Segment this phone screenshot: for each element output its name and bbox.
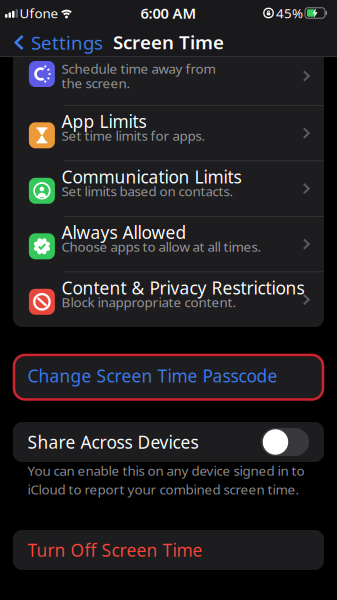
staticText: Change Screen Time Passcode	[27, 364, 277, 387]
button[interactable]: App Limits	[13, 106, 324, 160]
staticText: Set time limits for apps.	[61, 127, 205, 144]
staticText: Set limits based on contacts.	[61, 182, 233, 200]
staticText: Content & Privacy Restrictions	[61, 276, 304, 299]
staticText: Ufone	[19, 4, 58, 22]
button[interactable]: Communication Limits	[13, 161, 324, 216]
staticText: You can enable this on any device signed…	[27, 462, 304, 479]
staticText: Turn Off Screen Time	[27, 538, 202, 561]
staticText: Screen Time	[113, 30, 224, 54]
staticText: the screen.	[61, 74, 130, 92]
staticText: iCloud to report your combined screen ti…	[27, 480, 299, 498]
staticText: Schedule time away from	[61, 60, 215, 77]
button[interactable]: Content & Privacy Restrictions	[13, 272, 324, 327]
staticText: 6:00 AM	[140, 3, 196, 23]
staticText: Block inappropriate content.	[61, 293, 236, 311]
button[interactable]: Settings	[6, 28, 146, 56]
staticText: Always Allowed	[61, 221, 186, 244]
staticText: Communication Limits	[61, 165, 241, 188]
button[interactable]: Change Screen Time Passcode	[13, 356, 324, 398]
staticText: 45%	[276, 4, 303, 22]
staticText: App Limits	[61, 110, 146, 133]
button[interactable]: Turn Off Screen Time	[13, 530, 324, 570]
button[interactable]: Always Allowed	[13, 217, 324, 271]
button[interactable]: Schedule time away from	[13, 47, 324, 105]
staticText: Settings	[31, 30, 103, 55]
button[interactable]: Share Across Devices	[261, 428, 309, 456]
staticText: Choose apps to allow at all times.	[61, 238, 261, 255]
staticText: Share Across Devices	[27, 430, 198, 453]
